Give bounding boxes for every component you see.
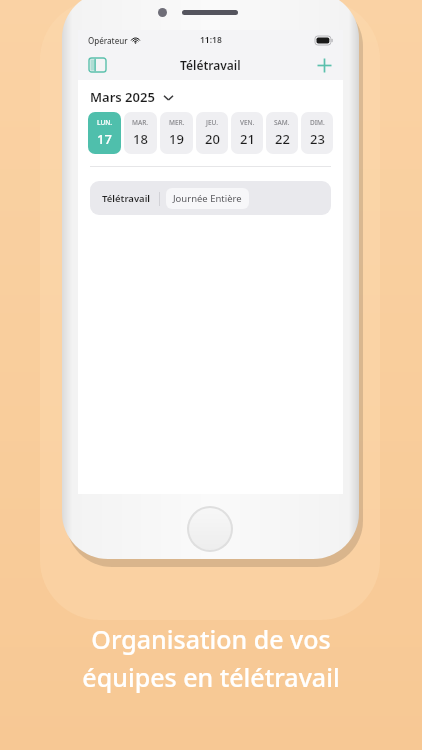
button[interactable]: Ajouter [311,52,337,78]
staticText: Opérateur [88,35,128,46]
staticText: 11:18 [200,34,222,46]
button[interactable]: DIM. [301,112,333,154]
staticText: 18 [133,130,148,148]
staticText: Télétravail [102,192,151,205]
staticText: 23 [310,130,325,148]
button[interactable]: VEN. [231,112,263,154]
button[interactable]: JEU. [196,112,228,154]
button[interactable]: Choisir le mois [161,90,175,104]
staticText: JEU. [206,118,218,127]
button[interactable]: Sidebar [84,52,110,78]
staticText: Mars 2025 [90,88,155,106]
staticText: MAR. [132,118,149,127]
staticText: SAM. [274,118,290,127]
staticText: VEN. [240,118,255,127]
button[interactable]: LUN. [88,112,121,154]
staticText: 22 [275,130,290,148]
staticText: équipes en télétravail [82,660,340,694]
button[interactable]: Journée Entière [166,188,249,209]
staticText: DIM. [310,118,325,127]
staticText: Organisation de vos [91,622,331,656]
staticText: 21 [240,130,255,148]
button[interactable]: MAR. [124,112,157,154]
staticText: 19 [169,130,184,148]
button[interactable]: Télétravail [100,188,153,209]
button[interactable]: SAM. [266,112,298,154]
staticText: Journée Entière [173,192,242,205]
button[interactable]: Home [187,506,233,552]
staticText: MER. [169,118,185,127]
button[interactable]: MER. [160,112,193,154]
staticText: LUN. [97,118,113,127]
staticText: Télétravail [180,57,241,73]
staticText: 17 [97,130,112,148]
staticText: 20 [205,130,220,148]
